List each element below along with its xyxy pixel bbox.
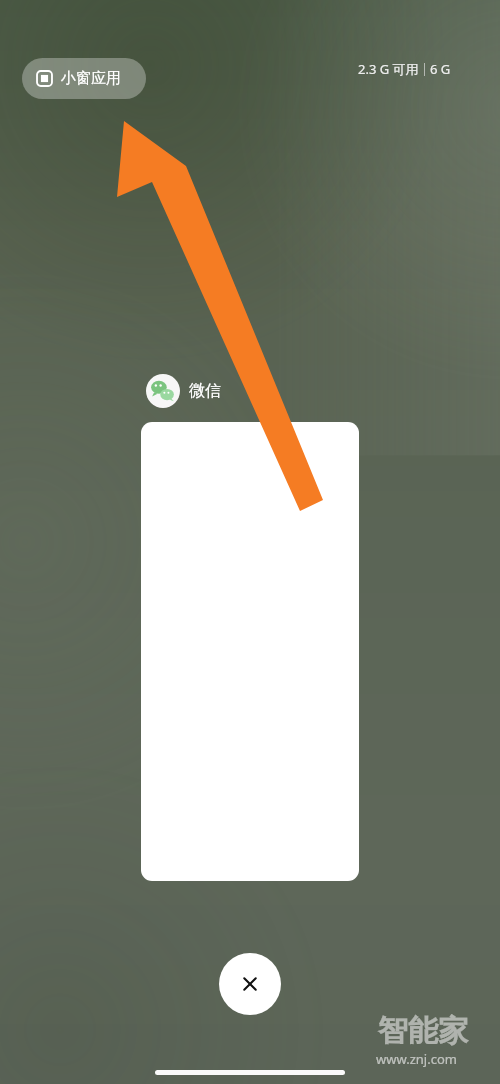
button[interactable]: 小窗应用: [22, 58, 146, 99]
staticText: www.znj.com: [376, 1050, 457, 1068]
staticText: 微信: [189, 381, 221, 401]
button[interactable]: 微信: [146, 374, 221, 408]
button[interactable]: Close: [219, 953, 281, 1015]
staticText: 6 G: [430, 60, 451, 78]
staticText: 2.3 G 可用: [358, 60, 419, 78]
button[interactable]: [141, 422, 359, 881]
staticText: 智能家: [378, 1012, 468, 1050]
staticText: 小窗应用: [61, 69, 121, 88]
